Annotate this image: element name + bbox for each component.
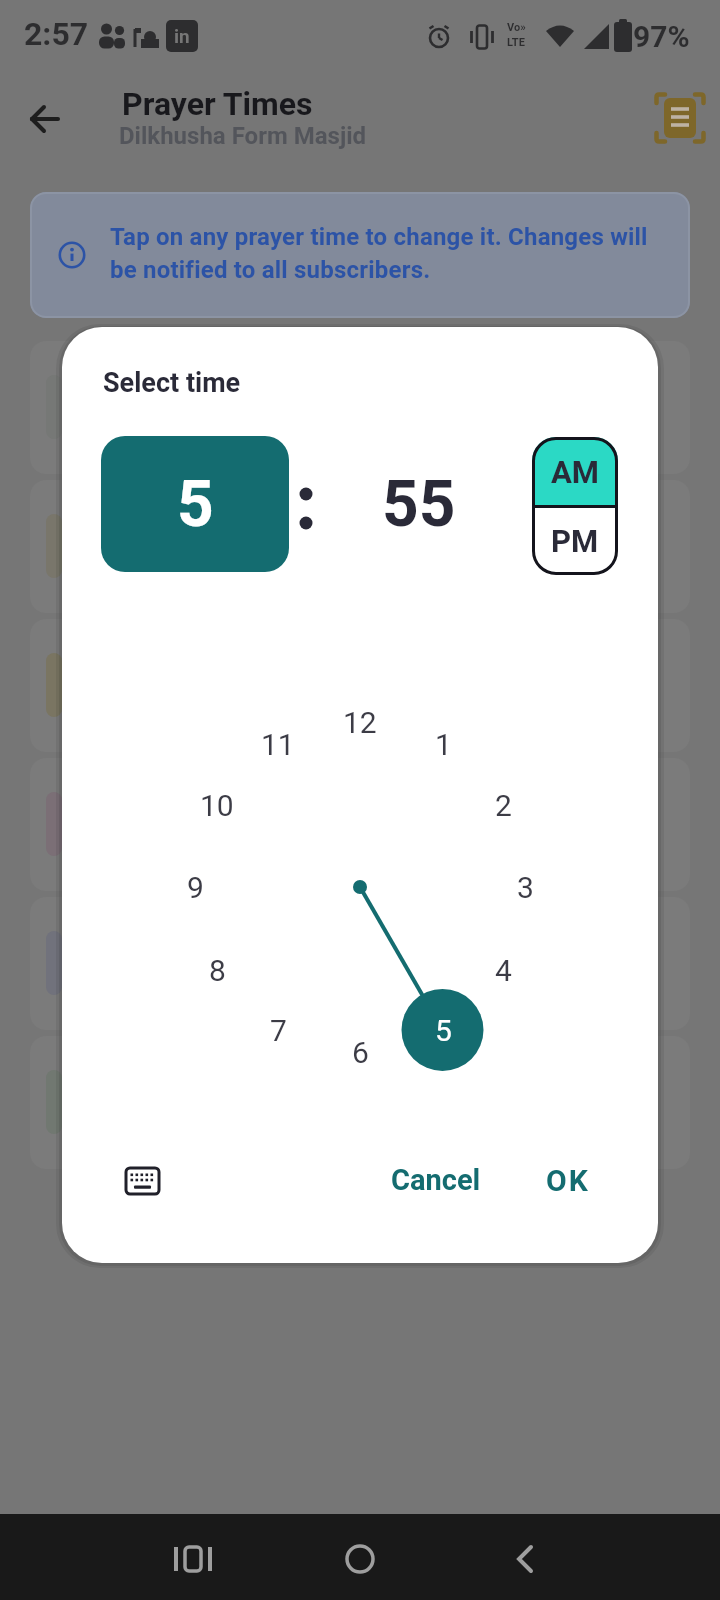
staticText: 55 [382, 467, 456, 542]
staticText: 6 [352, 1035, 369, 1070]
staticText: 10 [200, 788, 234, 823]
staticText: Select time [103, 367, 241, 399]
button[interactable]: OK [528, 1152, 608, 1208]
staticText: 3 [517, 870, 534, 905]
button[interactable]: 8 [187, 940, 247, 1000]
button[interactable] [497, 1531, 553, 1587]
staticText: Dilkhusha Form Masjid [119, 122, 367, 150]
staticText: 5 [177, 467, 214, 542]
button[interactable]: 11 [248, 714, 308, 774]
staticText: OK [546, 1163, 590, 1198]
button[interactable] [654, 92, 706, 144]
button[interactable]: 12 [330, 692, 390, 752]
button[interactable]: 2 [473, 775, 533, 835]
staticText: Vo» [507, 21, 526, 34]
button[interactable]: 4 [473, 940, 533, 1000]
staticText: PM [551, 523, 599, 559]
button[interactable] [165, 1531, 221, 1587]
staticText: be notified to all subscribers. [110, 256, 431, 284]
staticText: 7 [270, 1013, 287, 1048]
button[interactable] [118, 1161, 166, 1203]
button[interactable]: AM [532, 437, 618, 506]
staticText: 9 [187, 870, 204, 905]
staticText: 2:57 [24, 15, 89, 53]
staticText: 12 [343, 705, 377, 740]
button[interactable]: 3 [495, 857, 555, 917]
staticText: LTE [507, 36, 525, 49]
button[interactable] [332, 1531, 388, 1587]
staticText: AM [551, 454, 600, 490]
button[interactable] [20, 94, 70, 144]
button[interactable]: 9 [165, 857, 225, 917]
button[interactable]: 6 [330, 1022, 390, 1082]
staticText: 1 [435, 727, 452, 762]
button[interactable]: 5 [413, 1000, 473, 1060]
button[interactable]: 10 [187, 775, 247, 835]
staticText: 5 [435, 1013, 452, 1048]
staticText: 11 [261, 727, 295, 762]
staticText: Tap on any prayer time to change it. Cha… [110, 223, 648, 251]
staticText: in [174, 25, 190, 47]
button[interactable]: 7 [248, 1000, 308, 1060]
button[interactable]: 5 [101, 436, 289, 572]
staticText: 2 [495, 788, 512, 823]
staticText: Prayer Times [122, 85, 313, 123]
button[interactable]: 1 [413, 714, 473, 774]
staticText: Cancel [391, 1163, 481, 1197]
button[interactable]: PM [532, 506, 618, 575]
staticText: 4 [495, 953, 512, 988]
staticText: 8 [209, 953, 226, 988]
button[interactable]: Cancel [366, 1152, 506, 1208]
staticText: 97% [633, 19, 690, 54]
button[interactable]: 55 [325, 436, 513, 572]
